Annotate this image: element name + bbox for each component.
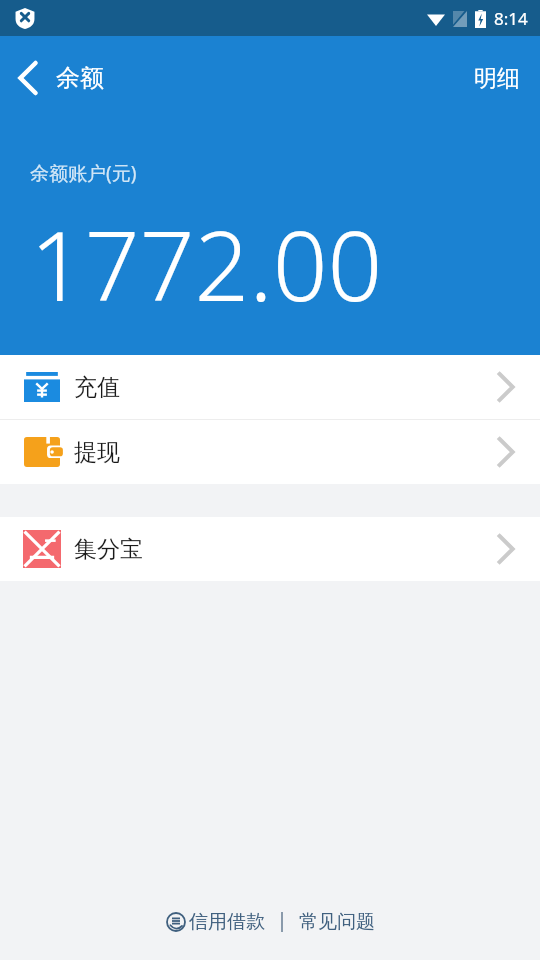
button[interactable]: 明细 (454, 36, 540, 120)
staticText: 明细 (474, 64, 520, 93)
button[interactable]: 提现 (0, 420, 540, 484)
staticText: 充值 (74, 373, 498, 402)
staticText: 余额 (56, 63, 104, 93)
staticText: 信用借款 (189, 910, 265, 934)
staticText: 提现 (74, 438, 498, 467)
button[interactable]: 信用借款 (160, 906, 271, 938)
staticText: 8:14 (494, 7, 528, 30)
button[interactable]: Back (0, 36, 56, 120)
button[interactable]: 集分宝 (0, 517, 540, 581)
staticText: 1772.00 (30, 198, 383, 329)
button[interactable]: 常见问题 (293, 906, 381, 938)
staticText: 集分宝 (74, 535, 498, 564)
staticText: 常见问题 (299, 910, 375, 934)
button[interactable]: 充值 (0, 355, 540, 419)
staticText: 余额账户(元) (30, 160, 137, 186)
